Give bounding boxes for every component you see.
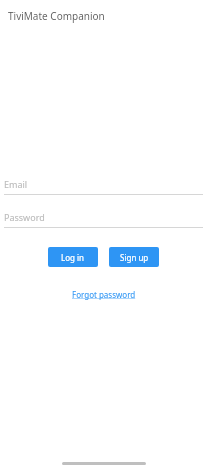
button[interactable]: Email (0, 178, 207, 195)
staticText: Email (4, 178, 28, 190)
staticText: TiviMate Companion (8, 9, 105, 23)
staticText: Sign up (120, 252, 149, 263)
staticText: Log in (61, 252, 85, 263)
button[interactable]: Sign up (109, 247, 159, 267)
button[interactable]: Forgot password (72, 289, 136, 300)
button[interactable]: Password (0, 211, 207, 228)
staticText: Forgot password (72, 289, 136, 300)
button[interactable]: Log in (48, 247, 98, 267)
staticText: Password (4, 211, 45, 223)
